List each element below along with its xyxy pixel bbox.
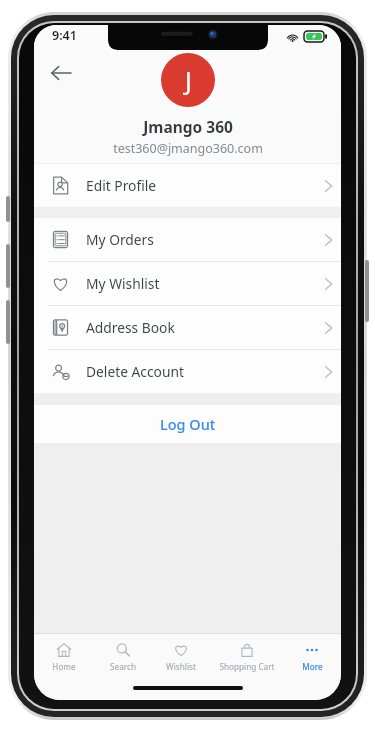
staticText: Jmango 360 <box>143 116 233 137</box>
button[interactable]: Home <box>34 634 93 678</box>
button[interactable]: Search <box>93 634 152 678</box>
staticText: Log Out <box>160 414 216 434</box>
button[interactable]: Back <box>40 52 82 94</box>
staticText: 9:41 <box>52 27 77 44</box>
staticText: Address Book <box>86 318 315 337</box>
staticText: Search <box>110 661 136 672</box>
staticText: J <box>185 63 192 97</box>
staticText: test360@jmango360.com <box>113 140 263 157</box>
button[interactable]: My Wishlist <box>34 262 341 305</box>
button[interactable]: Shopping Cart <box>210 634 283 678</box>
staticText: Edit Profile <box>86 176 315 195</box>
staticText: My Wishlist <box>86 274 315 293</box>
button[interactable]: My Orders <box>34 218 341 261</box>
staticText: My Orders <box>86 230 315 249</box>
button[interactable]: Edit Profile <box>34 164 341 207</box>
button[interactable]: Log Out <box>34 405 341 443</box>
staticText: Home <box>52 661 76 672</box>
button[interactable]: Profile avatar <box>161 53 215 107</box>
staticText: More <box>302 661 323 672</box>
staticText: Wishlist <box>166 661 196 672</box>
staticText: Shopping Cart <box>219 661 275 672</box>
button[interactable]: More <box>283 634 341 678</box>
staticText: Delete Account <box>86 362 315 381</box>
button[interactable]: Wishlist <box>152 634 210 678</box>
button[interactable]: Delete Account <box>34 350 341 393</box>
button[interactable]: Address Book <box>34 306 341 349</box>
